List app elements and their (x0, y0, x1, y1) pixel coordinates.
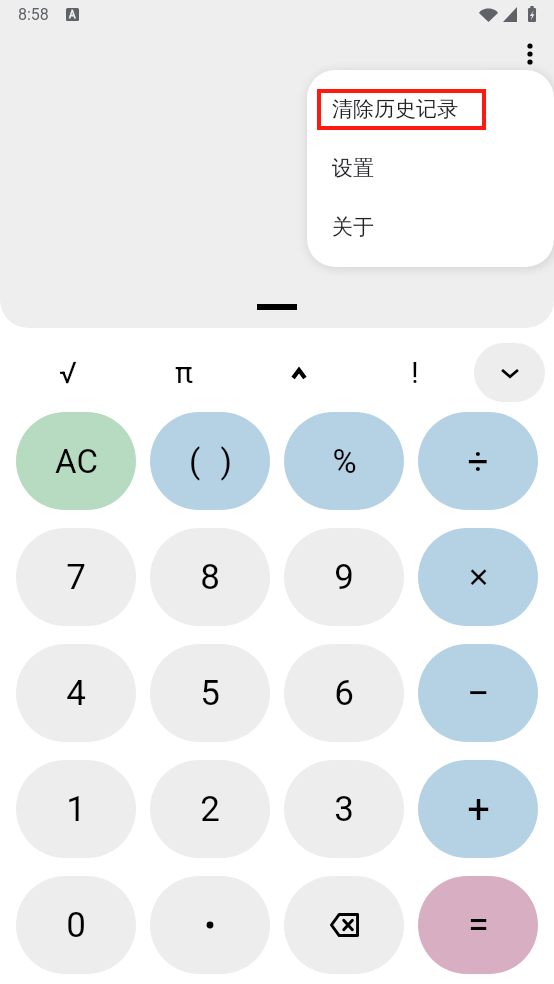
staticText: 8 (200, 557, 220, 598)
button[interactable] (150, 876, 270, 974)
staticText: A (69, 9, 76, 21)
staticText: % (332, 442, 357, 481)
staticText: 4 (66, 673, 86, 714)
button[interactable]: More options (506, 30, 554, 78)
other: Backspace (329, 913, 359, 937)
staticText: AC (55, 442, 98, 481)
staticText: + (467, 786, 490, 833)
staticText: 2 (200, 789, 220, 830)
button[interactable]: = (418, 876, 538, 974)
button[interactable]: 0 (16, 876, 136, 974)
staticText: 清除历史记录 (332, 96, 458, 122)
button[interactable]: ÷ (418, 412, 538, 510)
staticText: 5 (200, 673, 220, 714)
button[interactable]: % (284, 412, 404, 510)
button[interactable]: ! (387, 343, 443, 402)
staticText: ÷ (467, 440, 489, 483)
button[interactable]: ( ) (150, 412, 270, 510)
button[interactable]: π (156, 343, 212, 402)
staticText: 8:58 (18, 5, 49, 24)
button[interactable]: AC (16, 412, 136, 510)
button[interactable]: 3 (284, 760, 404, 858)
staticText: ✕ (467, 562, 490, 593)
staticText: 设置 (332, 155, 374, 181)
button[interactable]: Collapse advanced keys (474, 343, 545, 402)
button[interactable]: 设置 (307, 139, 554, 197)
button[interactable]: 1 (16, 760, 136, 858)
staticText: 6 (334, 673, 354, 714)
staticText: π (175, 355, 193, 390)
button[interactable]: 2 (150, 760, 270, 858)
button[interactable]: Power (271, 343, 327, 402)
button[interactable]: + (418, 760, 538, 858)
button[interactable]: 8 (150, 528, 270, 626)
button[interactable]: Backspace (284, 876, 404, 974)
staticText: 9 (334, 557, 354, 598)
button[interactable]: 关于 (307, 198, 554, 256)
button[interactable]: 6 (284, 644, 404, 742)
staticText: − (467, 670, 490, 717)
button[interactable]: 4 (16, 644, 136, 742)
staticText: 关于 (332, 214, 374, 240)
button[interactable]: 5 (150, 644, 270, 742)
button[interactable]: 7 (16, 528, 136, 626)
button[interactable]: 9 (284, 528, 404, 626)
staticText: 0 (66, 905, 86, 946)
staticText: 1 (66, 789, 86, 830)
staticText: 3 (334, 789, 354, 830)
staticText: ( ) (189, 442, 232, 481)
staticText: = (468, 903, 489, 948)
staticText: 7 (66, 557, 86, 598)
staticText: √ (59, 355, 77, 390)
button[interactable]: √ (40, 343, 96, 402)
button[interactable]: 清除历史记录 (307, 80, 554, 138)
button[interactable]: ✕ (418, 528, 538, 626)
button[interactable]: − (418, 644, 538, 742)
staticText: ! (411, 355, 419, 390)
